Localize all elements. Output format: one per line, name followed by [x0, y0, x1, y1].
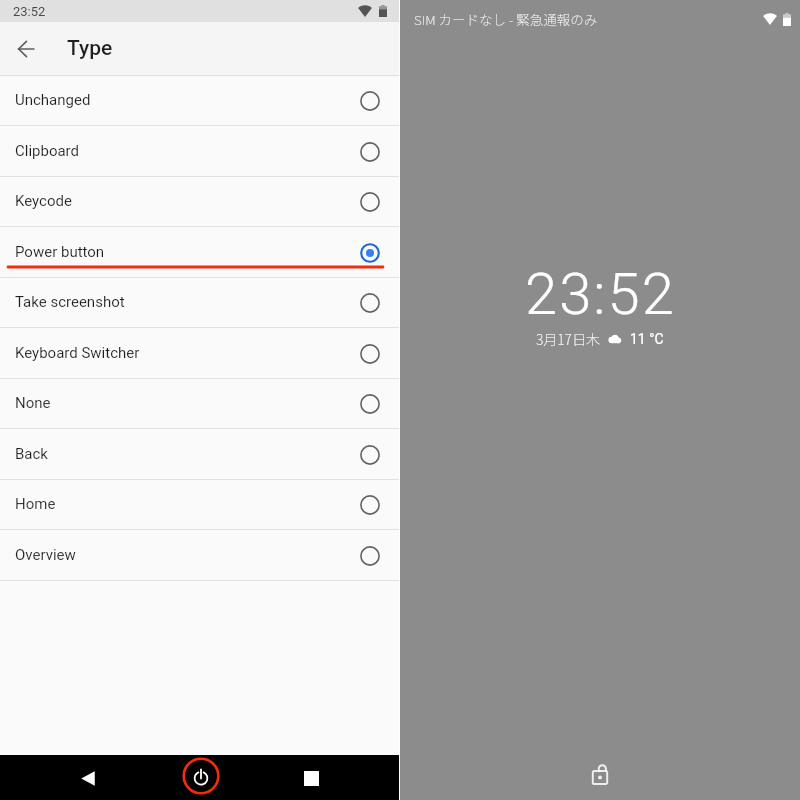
staticText: Keycode [15, 192, 360, 210]
staticText: Overview [15, 546, 360, 564]
button[interactable]: Navigate up [8, 31, 44, 67]
staticText: Home [15, 495, 360, 513]
staticText: None [15, 394, 360, 412]
staticText: Unchanged [15, 91, 360, 109]
staticText: 3月17日木 [536, 329, 600, 349]
button[interactable]: Clipboard [0, 126, 399, 177]
button[interactable]: Power [179, 754, 223, 798]
button[interactable]: Back [0, 429, 399, 480]
button[interactable]: Unlock [580, 754, 620, 794]
staticText: Keyboard Switcher [15, 344, 360, 362]
button[interactable]: Overview [0, 530, 399, 581]
staticText: Take screenshot [15, 293, 360, 311]
staticText: 23:52 [525, 260, 676, 328]
staticText: SIM カードなし - 緊急通報のみ [414, 9, 598, 29]
button[interactable]: Recent apps [294, 761, 328, 795]
button[interactable]: Power button [0, 227, 399, 278]
button[interactable]: Keycode [0, 176, 399, 227]
staticText: Back [15, 445, 360, 463]
button[interactable]: Take screenshot [0, 277, 399, 328]
staticText: Type [67, 36, 113, 61]
staticText: Power button [15, 243, 360, 261]
staticText: 23:52 [13, 4, 46, 19]
staticText: 11 °C [630, 331, 664, 347]
button[interactable]: Unchanged [0, 75, 399, 126]
staticText: Clipboard [15, 142, 360, 160]
button[interactable]: Back [71, 761, 105, 795]
button[interactable]: Keyboard Switcher [0, 328, 399, 379]
button[interactable]: Home [0, 479, 399, 530]
button[interactable]: None [0, 378, 399, 429]
